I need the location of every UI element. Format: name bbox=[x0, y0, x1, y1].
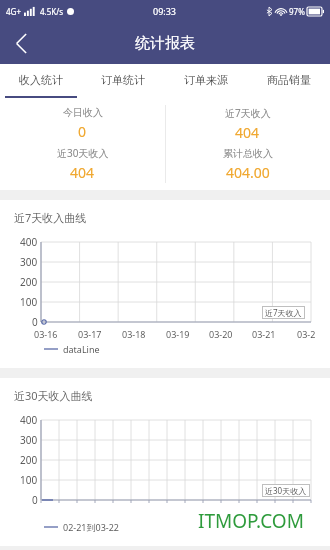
staticText: 400 bbox=[20, 235, 38, 249]
staticText: 03-21 bbox=[252, 328, 276, 340]
staticText: 03-17 bbox=[78, 328, 102, 340]
staticText: 02-21到03-22 bbox=[63, 521, 119, 533]
staticText: 100 bbox=[20, 295, 38, 309]
staticText: 近30天收入 bbox=[265, 485, 307, 496]
button[interactable]: 近30天收入曲线 bbox=[0, 378, 330, 546]
staticText: 404 bbox=[235, 123, 260, 142]
staticText: ITMOP.COM bbox=[198, 508, 304, 534]
staticText: 300 bbox=[20, 433, 38, 447]
staticText: 03-19 bbox=[166, 328, 190, 340]
staticText: 订单来源 bbox=[184, 73, 228, 87]
staticText: 近7天收入曲线 bbox=[14, 210, 87, 225]
staticText: 0 bbox=[32, 315, 38, 329]
button[interactable]: 订单统计 bbox=[82, 64, 164, 96]
button[interactable]: Back bbox=[0, 22, 42, 64]
staticText: 收入统计 bbox=[19, 73, 63, 87]
button[interactable]: 近7天收入 bbox=[165, 98, 330, 190]
staticText: 近7天收入 bbox=[265, 307, 302, 318]
button[interactable]: 近7天收入曲线 bbox=[0, 200, 330, 368]
staticText: 4G+ bbox=[6, 6, 21, 17]
staticText: 近30天收入曲线 bbox=[14, 388, 93, 403]
staticText: 近30天收入 bbox=[57, 146, 109, 160]
staticText: 近7天收入 bbox=[225, 106, 271, 120]
staticText: 03-16 bbox=[34, 328, 58, 340]
staticText: 03-20 bbox=[209, 328, 233, 340]
button[interactable]: 商品销量 bbox=[247, 64, 330, 96]
staticText: 404 bbox=[70, 163, 95, 182]
staticText: 400 bbox=[20, 413, 38, 427]
staticText: 300 bbox=[20, 255, 38, 269]
staticText: 09:33 bbox=[153, 5, 177, 17]
staticText: 0 bbox=[78, 122, 87, 141]
staticText: 订单统计 bbox=[101, 73, 145, 87]
staticText: 4.5K/s bbox=[40, 6, 64, 17]
button[interactable]: 今日收入 bbox=[0, 98, 165, 190]
staticText: 97% bbox=[289, 6, 305, 17]
staticText: 今日收入 bbox=[63, 106, 103, 119]
staticText: 0 bbox=[32, 493, 38, 507]
staticText: 03-2 bbox=[297, 328, 316, 340]
button[interactable]: 订单来源 bbox=[164, 64, 247, 96]
staticText: 商品销量 bbox=[267, 73, 311, 87]
staticText: 累计总收入 bbox=[223, 147, 273, 160]
staticText: 200 bbox=[20, 453, 38, 467]
staticText: 统计报表 bbox=[135, 34, 195, 53]
button[interactable]: 收入统计 bbox=[0, 64, 82, 96]
staticText: dataLine bbox=[63, 343, 100, 355]
staticText: 404.00 bbox=[226, 163, 270, 182]
staticText: 100 bbox=[20, 473, 38, 487]
staticText: 200 bbox=[20, 275, 38, 289]
staticText: 03-18 bbox=[122, 328, 146, 340]
